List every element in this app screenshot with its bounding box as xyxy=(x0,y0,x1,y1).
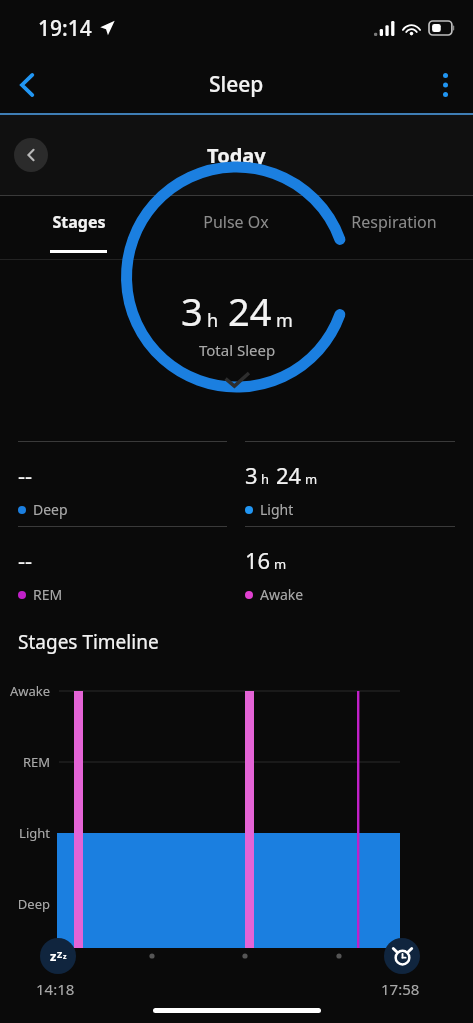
button[interactable]: 16 xyxy=(245,526,455,604)
staticText: Stages xyxy=(52,211,106,233)
staticText: 16 xyxy=(245,545,271,575)
staticText: Z xyxy=(57,948,63,960)
staticText: h xyxy=(207,308,219,333)
staticText: Today xyxy=(207,142,266,169)
staticText: 17:58 xyxy=(381,979,420,999)
staticText: 19:14 xyxy=(38,14,92,43)
staticText: 24 xyxy=(228,285,272,337)
button[interactable]: Pulse Ox xyxy=(157,195,315,259)
staticText: m xyxy=(305,470,318,488)
staticText: Awake xyxy=(260,585,304,604)
staticText: Respiration xyxy=(351,211,437,233)
staticText: Light xyxy=(0,824,50,842)
staticText: 3 xyxy=(245,460,258,490)
staticText: Deep xyxy=(0,895,50,913)
staticText: Light xyxy=(260,500,294,519)
button[interactable]: -- xyxy=(18,526,227,604)
staticText: z xyxy=(63,952,67,962)
staticText: 14:18 xyxy=(36,979,75,999)
button[interactable]: Previous day xyxy=(14,138,48,172)
button[interactable]: More options xyxy=(423,63,467,107)
staticText: Deep xyxy=(33,500,68,519)
button[interactable]: 3 xyxy=(245,441,455,519)
staticText: 3 xyxy=(181,285,203,337)
staticText: Pulse Ox xyxy=(203,211,269,233)
button[interactable]: Sleep start xyxy=(40,938,76,974)
staticText: -- xyxy=(18,545,33,575)
staticText: m xyxy=(274,555,287,573)
staticText: Total Sleep xyxy=(199,340,276,360)
staticText: Awake xyxy=(0,682,50,700)
staticText: REM xyxy=(33,585,63,604)
button[interactable]: Back xyxy=(4,62,50,108)
staticText: 24 xyxy=(276,460,302,490)
staticText: m xyxy=(276,308,293,333)
staticText: REM xyxy=(0,753,50,771)
staticText: z xyxy=(50,947,57,965)
button[interactable]: Stages xyxy=(0,195,157,259)
button[interactable]: Wake time xyxy=(384,938,420,974)
staticText: -- xyxy=(18,460,33,490)
staticText: Sleep xyxy=(209,70,264,99)
button[interactable]: Respiration xyxy=(315,195,473,259)
staticText: Stages Timeline xyxy=(18,629,159,655)
staticText: h xyxy=(261,470,270,488)
button[interactable]: -- xyxy=(18,441,227,519)
